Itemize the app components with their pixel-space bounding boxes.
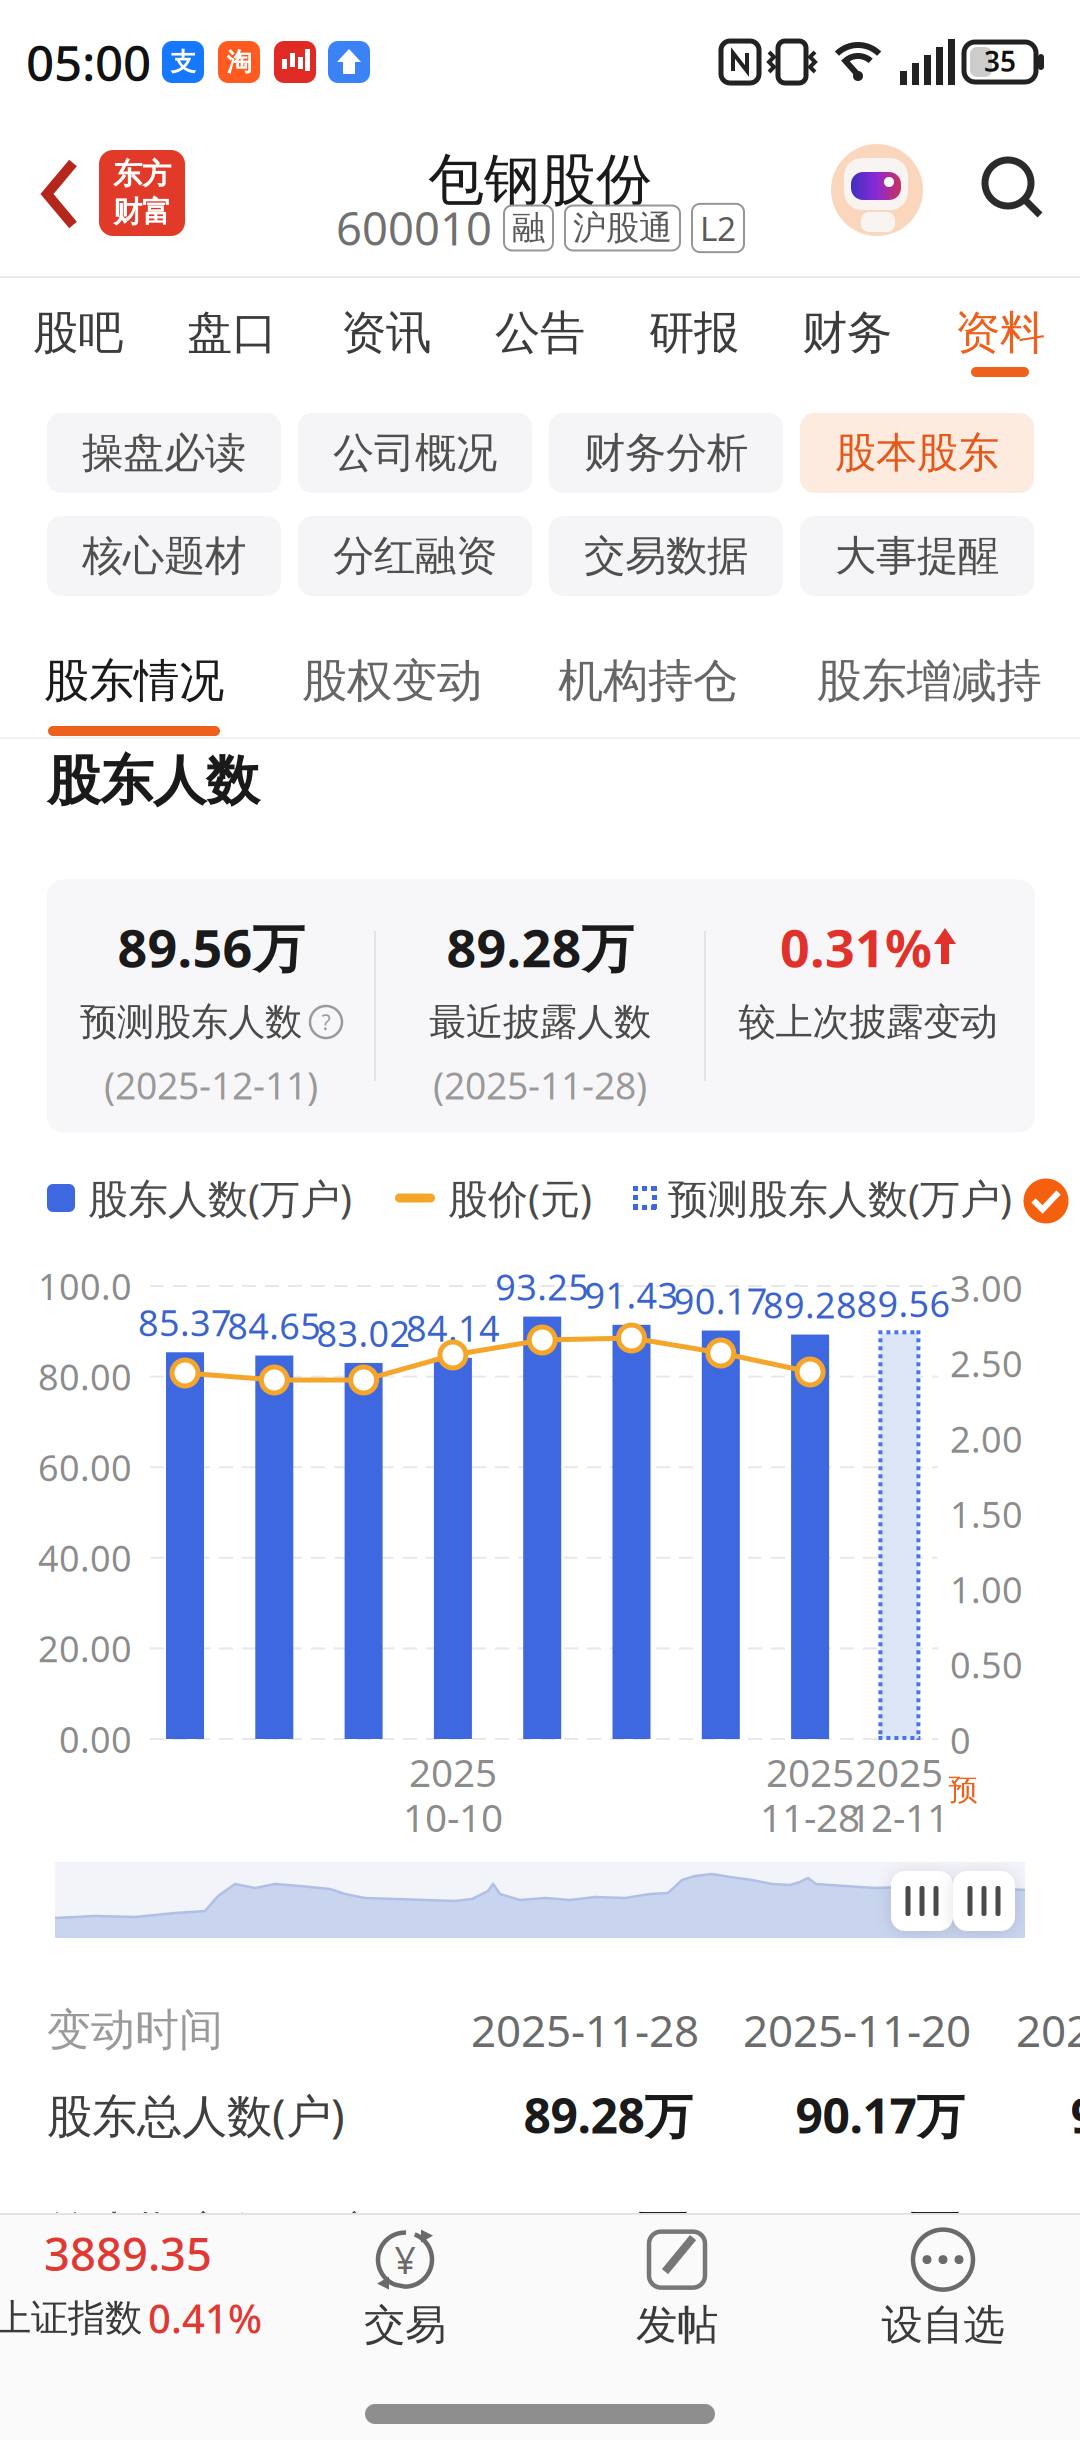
staticText: 股权变动	[302, 653, 482, 709]
staticText: 财务分析	[584, 428, 748, 478]
button[interactable]: 大事提醒	[800, 516, 1034, 596]
staticText: 3.00	[950, 1264, 1023, 1312]
staticText: (2025-12-11)	[104, 1060, 318, 1110]
staticText: 0	[950, 1716, 971, 1764]
button[interactable]: 范围手柄	[891, 1871, 953, 1931]
staticText: 股东总人数(户)	[47, 2085, 345, 2145]
staticText: 12-11	[849, 1791, 949, 1843]
staticText: 股本股东	[835, 428, 999, 478]
button[interactable]: 机构持仓	[558, 653, 738, 709]
button[interactable]: 智能助手	[831, 144, 923, 236]
staticText: 较上次披露变动	[738, 999, 997, 1045]
staticText: 90.33万	[1070, 2083, 1080, 2147]
staticText: 11-28	[760, 1791, 860, 1843]
button[interactable]: 资料	[955, 305, 1045, 361]
staticText: -0.26万	[801, 2200, 958, 2264]
staticText: 最近披露人数	[429, 999, 651, 1045]
staticText: 84.65	[227, 1302, 321, 1349]
staticText: 2025	[409, 1746, 497, 1798]
staticText: 机构持仓	[558, 653, 738, 709]
button[interactable]: 股东增减持	[816, 653, 1041, 709]
staticText: 财富	[113, 194, 171, 230]
staticText: 91.43	[584, 1271, 678, 1319]
button[interactable]: ¥	[364, 2230, 446, 2350]
staticText: 资讯	[341, 305, 431, 361]
staticText: 研报	[649, 305, 739, 361]
button[interactable]: 研报	[649, 305, 739, 361]
staticText: 0.31%	[780, 912, 932, 982]
staticText: 3889.35	[44, 2223, 212, 2283]
staticText: 上证指数	[0, 2295, 142, 2341]
button[interactable]: 股东情况	[44, 653, 224, 709]
staticText: (2025-11-28)	[433, 1060, 647, 1110]
staticText: 大事提醒	[835, 531, 999, 581]
button[interactable]: 范围手柄	[953, 1871, 1015, 1931]
staticText: 支	[170, 46, 195, 77]
button[interactable]: 核心题材	[47, 516, 281, 596]
button[interactable]: 图表设置	[1023, 1178, 1068, 1223]
staticText: 核心题材	[82, 531, 246, 581]
staticText: 包钢股份	[428, 146, 652, 214]
staticText: 20.00	[38, 1624, 132, 1672]
button[interactable]: 盘口	[187, 305, 277, 361]
staticText: 财务	[802, 305, 892, 361]
staticText: 2025-11-28	[471, 2001, 699, 2059]
staticText: 1.50	[950, 1490, 1023, 1538]
staticText: 85.37	[138, 1298, 232, 1346]
staticText: 股价(元)	[448, 1171, 592, 1224]
staticText: 预	[948, 1772, 977, 1808]
button[interactable]: 3889.35	[0, 2223, 262, 2345]
button[interactable]: 东方财富	[99, 150, 185, 236]
staticText: 较上期变化(万户)	[47, 2202, 390, 2262]
staticText: 股东人数	[47, 748, 259, 814]
button[interactable]: 股权变动	[302, 653, 482, 709]
button[interactable]: Search	[982, 157, 1044, 219]
staticText: 89.56	[856, 1279, 950, 1327]
staticText: 83.02	[317, 1309, 411, 1357]
button[interactable]: 资讯	[341, 305, 431, 361]
button[interactable]: 公告	[495, 305, 585, 361]
staticText: 89.28	[763, 1281, 857, 1328]
staticText: 89.56万	[117, 912, 304, 982]
staticText: 93.25	[495, 1263, 589, 1310]
staticText: 84.14	[406, 1304, 500, 1352]
button[interactable]: 股吧	[33, 305, 123, 361]
staticText: 89.28万	[446, 912, 633, 982]
staticText: 股东情况	[44, 653, 224, 709]
staticText: -0.89万	[529, 2200, 686, 2264]
staticText: 操盘必读	[82, 428, 246, 478]
button[interactable]: 交易数据	[549, 516, 783, 596]
staticText: 80.00	[38, 1353, 132, 1400]
staticText: 东方	[113, 156, 171, 192]
staticText: 2025-11-14	[1016, 2001, 1080, 2059]
button[interactable]: 发帖	[636, 2230, 718, 2350]
staticText: 公告	[495, 305, 585, 361]
staticText: 10-10	[403, 1791, 503, 1843]
staticText: 股吧	[33, 305, 123, 361]
staticText: 变动时间	[47, 2003, 223, 2057]
staticText: 0.00	[59, 1715, 132, 1763]
staticText: 分红融资	[333, 531, 497, 581]
staticText: 预测股东人数(万户)	[668, 1171, 1012, 1224]
button[interactable]: 分红融资	[298, 516, 532, 596]
staticText: 05:00	[26, 29, 151, 95]
staticText: 股东增减持	[816, 653, 1041, 709]
button[interactable]: Back	[41, 158, 79, 230]
button[interactable]: 财务分析	[549, 413, 783, 493]
staticText: 600010	[336, 198, 492, 258]
button[interactable]: 财务	[802, 305, 892, 361]
button[interactable]: 公司概况	[298, 413, 532, 493]
staticText: 发帖	[636, 2300, 718, 2350]
staticText: ¥	[394, 2235, 415, 2284]
staticText: 沪股通	[573, 207, 672, 248]
button[interactable]: 操盘必读	[47, 413, 281, 493]
staticText: 40.00	[38, 1534, 132, 1582]
staticText: 资料	[955, 305, 1045, 361]
staticText: 2025	[766, 1746, 854, 1798]
button[interactable]: 设自选	[881, 2230, 1004, 2350]
staticText: 2.00	[950, 1415, 1023, 1463]
staticText: ?	[321, 1008, 330, 1036]
button[interactable]: 股本股东	[800, 413, 1034, 493]
staticText: 100.0	[38, 1262, 132, 1310]
staticText: 2025-11-20	[743, 2001, 971, 2059]
